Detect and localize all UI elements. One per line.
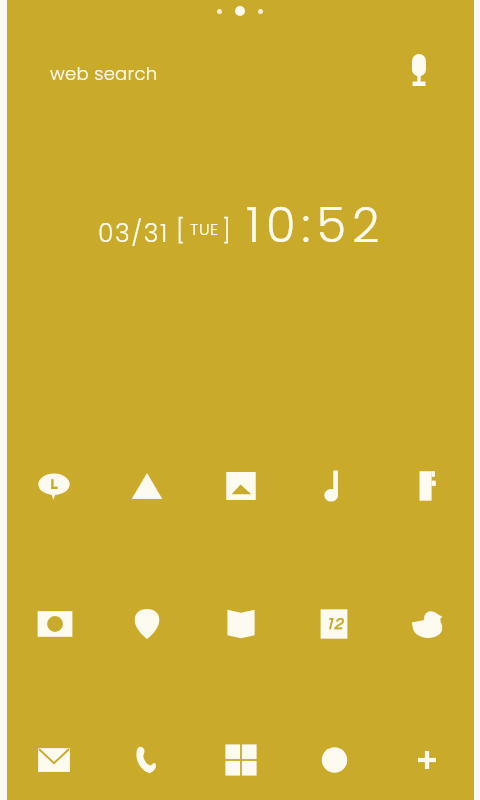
staticText: [ xyxy=(176,214,185,248)
button[interactable]: Apps xyxy=(211,730,271,790)
button[interactable]: Mail xyxy=(24,730,84,790)
button[interactable]: Phone xyxy=(117,730,177,790)
staticText: web search xyxy=(50,61,158,86)
button[interactable]: Twitter xyxy=(397,594,457,654)
button[interactable]: Gallery xyxy=(211,456,271,516)
button[interactable]: Maps xyxy=(211,594,271,654)
button[interactable]: Facebook xyxy=(397,456,457,516)
button[interactable]: Play xyxy=(117,456,177,516)
staticText: TUE xyxy=(190,218,219,240)
button[interactable]: Browser xyxy=(304,730,364,790)
button[interactable]: Location xyxy=(117,594,177,654)
button[interactable]: Calendar xyxy=(304,594,364,654)
staticText: 10:52 xyxy=(246,192,386,259)
button[interactable]: Music xyxy=(304,456,364,516)
staticText: 12 xyxy=(325,616,343,632)
button[interactable]: LINE xyxy=(24,456,84,516)
button[interactable]: web search xyxy=(44,55,164,92)
button[interactable]: Voice search xyxy=(397,48,441,92)
button[interactable]: Camera xyxy=(24,594,84,654)
staticText: ] xyxy=(222,214,231,248)
button[interactable]: Add xyxy=(397,730,457,790)
staticText: 03/31 xyxy=(98,216,169,251)
